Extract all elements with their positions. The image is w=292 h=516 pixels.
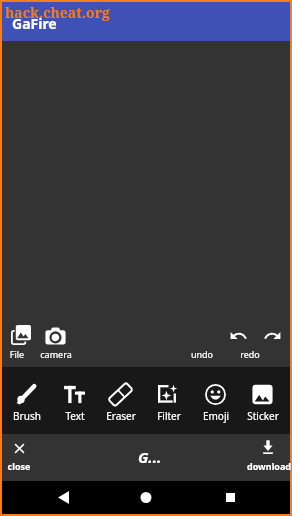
staticText: G... [138, 447, 162, 467]
other: Download [261, 440, 275, 454]
staticText: Brush [5, 409, 49, 423]
button[interactable]: G... [130, 442, 170, 472]
staticText: camera [0, 348, 116, 360]
staticText: GaFire [12, 14, 57, 33]
button[interactable]: GaFire [2, 2, 290, 41]
staticText: Text [53, 409, 97, 423]
staticText: Eraser [99, 409, 143, 423]
button[interactable]: Emoji [194, 371, 238, 427]
button[interactable]: File [6, 320, 36, 350]
button[interactable]: Brush [5, 371, 49, 427]
button[interactable]: camera [40, 321, 71, 352]
staticText: hack.cheat.org [5, 3, 110, 22]
staticText: redo [190, 348, 292, 360]
staticText: close [0, 460, 79, 472]
staticText: File [0, 348, 77, 360]
staticText: undo [142, 348, 262, 360]
button[interactable] [8, 437, 50, 477]
staticText: download [209, 460, 292, 472]
staticText: Emoji [194, 409, 238, 423]
button[interactable]: redo [258, 325, 287, 354]
button[interactable]: undo [224, 325, 253, 354]
button[interactable]: Eraser [99, 371, 143, 427]
other: Close [14, 443, 25, 454]
staticText: Filter [147, 409, 191, 423]
button[interactable]: Sticker [241, 371, 285, 427]
button[interactable]: Text [53, 371, 97, 427]
button[interactable]: Filter [147, 371, 191, 427]
staticText: Sticker [241, 409, 285, 423]
